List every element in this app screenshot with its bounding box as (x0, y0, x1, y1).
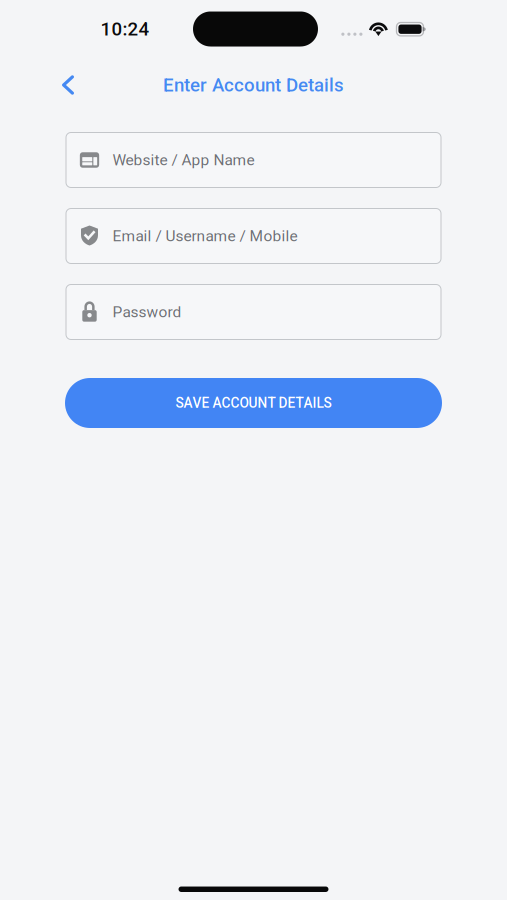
button[interactable]: Website / App Name (66, 132, 441, 187)
button[interactable]: Back (46, 63, 90, 107)
staticText: 10:24 (100, 18, 149, 40)
button[interactable]: SAVE ACCOUNT DETAILS (65, 378, 442, 428)
button[interactable]: Email / Username / Mobile (66, 208, 441, 263)
staticText: Password (112, 303, 181, 321)
staticText: Enter Account Details (163, 74, 344, 96)
staticText: Website / App Name (112, 151, 254, 169)
staticText: SAVE ACCOUNT DETAILS (175, 395, 331, 411)
staticText: Email / Username / Mobile (112, 227, 297, 245)
button[interactable]: Password (66, 284, 441, 339)
